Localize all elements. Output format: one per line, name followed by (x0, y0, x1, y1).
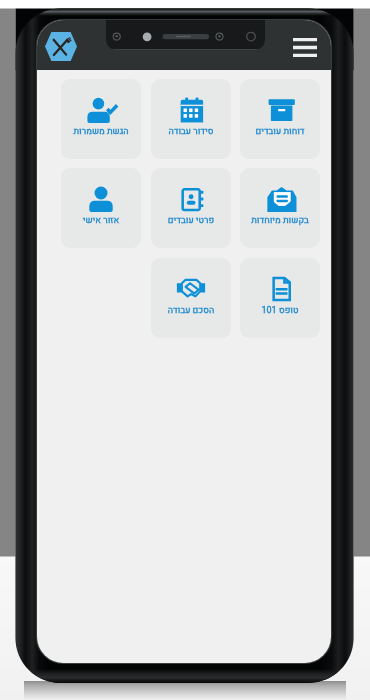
button[interactable]: פרטי עובדים (151, 168, 231, 248)
button[interactable]: הסכם עבודה (151, 258, 231, 338)
button[interactable]: Menu (286, 32, 324, 63)
staticText: בקשות מיוחדות (240, 214, 320, 227)
button[interactable]: App logo (45, 32, 77, 61)
staticText: הגשת משמרות (61, 125, 141, 138)
button[interactable]: סידור עבודה (151, 79, 231, 159)
staticText: אזור אישי (61, 214, 141, 227)
staticText: פרטי עובדים (151, 214, 231, 227)
staticText: הסכם עבודה (151, 304, 231, 317)
button[interactable]: בקשות מיוחדות (240, 168, 320, 248)
staticText: טופס 101 (240, 304, 320, 317)
button[interactable]: אזור אישי (61, 168, 141, 248)
button[interactable]: הגשת משמרות (61, 79, 141, 159)
button[interactable]: טופס 101 (240, 258, 320, 338)
staticText: סידור עבודה (151, 125, 231, 138)
button[interactable]: דוחות עובדים (240, 79, 320, 159)
staticText: דוחות עובדים (240, 125, 320, 138)
